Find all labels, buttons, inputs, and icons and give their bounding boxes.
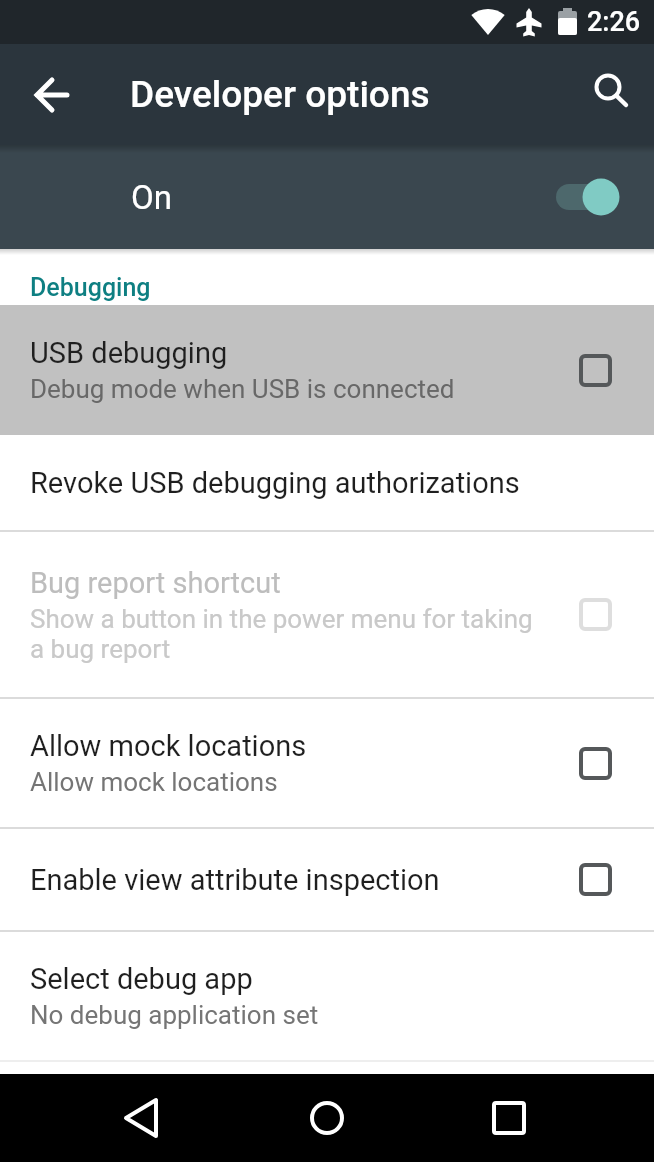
staticText: USB debugging [30,336,228,370]
staticText: Debugging [30,273,151,302]
button[interactable] [267,1074,387,1162]
staticText: Enable view attribute inspection [30,863,440,897]
staticText: Revoke USB debugging authorizations [30,466,520,500]
staticText: Developer options [130,73,430,116]
button[interactable]: On [0,145,654,249]
button[interactable]: Enable view attribute inspection [0,829,654,930]
button[interactable] [85,1074,205,1162]
staticText: No debug application set [30,1000,319,1030]
button[interactable] [584,67,640,123]
staticText: Allow mock locations [30,767,278,797]
staticText: Show a button in the power menu for taki… [30,604,533,664]
button[interactable]: USB debugging [0,305,654,435]
button[interactable] [449,1074,569,1162]
staticText: Debug mode when USB is connected [30,374,455,404]
button[interactable]: Bug report shortcut [0,532,654,697]
button[interactable] [22,65,82,125]
button[interactable]: Allow mock locations [0,699,654,827]
staticText: Allow mock locations [30,729,307,763]
staticText: Bug report shortcut [30,566,281,600]
staticText: 2:26 [587,6,641,38]
button[interactable]: Revoke USB debugging authorizations [0,435,654,530]
button[interactable]: Select debug app [0,932,654,1060]
staticText: Select debug app [30,962,253,996]
staticText: On [131,178,172,217]
